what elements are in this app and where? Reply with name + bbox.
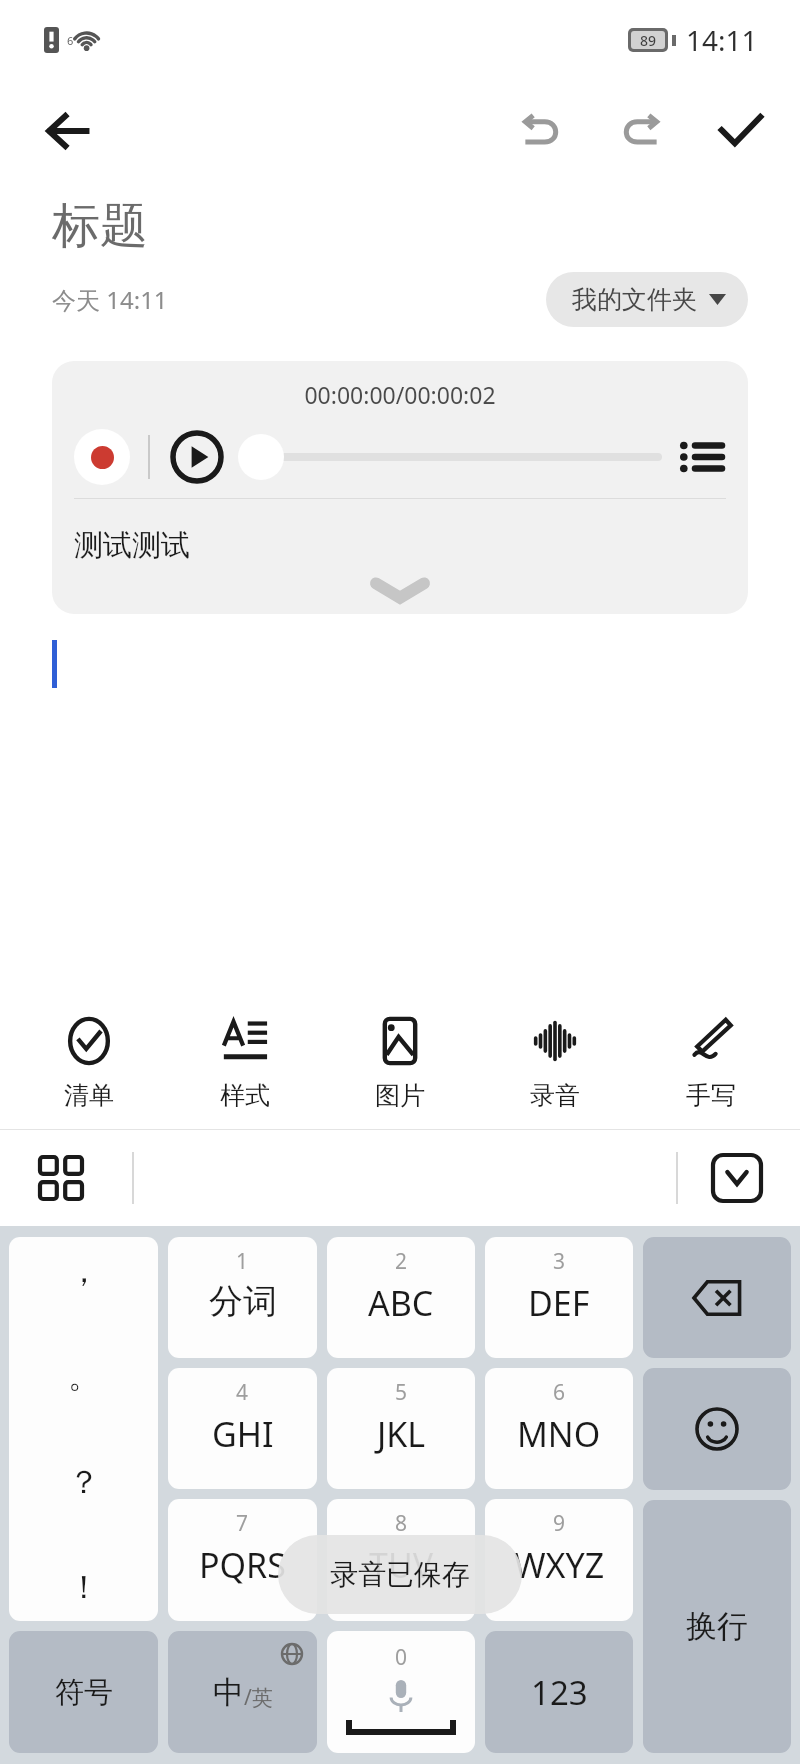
button[interactable]: 样式: [179, 1008, 311, 1119]
staticText: 2: [395, 1247, 408, 1276]
staticText: ，: [68, 1251, 100, 1291]
staticText: 今天 14:11: [52, 283, 168, 316]
staticText: JKL: [377, 1411, 426, 1457]
staticText: 9: [553, 1509, 566, 1538]
button[interactable]: 123: [485, 1631, 633, 1753]
button[interactable]: Playlist: [676, 432, 726, 482]
staticText: 。: [68, 1356, 100, 1396]
staticText: 换行: [686, 1607, 748, 1646]
staticText: PQRS: [199, 1542, 286, 1588]
staticText: 123: [531, 1670, 588, 1715]
staticText: 00:00:00/00:00:02: [52, 379, 748, 410]
staticText: 我的文件夹: [572, 284, 697, 315]
staticText: GHI: [212, 1411, 274, 1457]
staticText: 3: [553, 1247, 566, 1276]
button[interactable]: Space: [327, 1631, 475, 1753]
button[interactable]: Undo: [506, 96, 576, 166]
button[interactable]: 7: [168, 1499, 317, 1621]
button[interactable]: 8: [327, 1499, 475, 1621]
button[interactable]: Backspace: [643, 1237, 791, 1358]
button[interactable]: Expand: [52, 572, 748, 608]
staticText: DEF: [528, 1280, 590, 1326]
staticText: 手写: [686, 1080, 736, 1111]
button[interactable]: 2: [327, 1237, 475, 1358]
button[interactable]: 符号: [9, 1631, 158, 1753]
button[interactable]: Back: [34, 97, 102, 165]
staticText: ABC: [368, 1280, 434, 1326]
button[interactable]: 清单: [23, 1008, 155, 1119]
button[interactable]: Redo: [606, 96, 676, 166]
staticText: 分词: [209, 1280, 277, 1323]
staticText: 图片: [375, 1080, 425, 1111]
staticText: 录音: [530, 1080, 580, 1111]
staticText: 0: [395, 1643, 408, 1672]
staticText: 5: [395, 1378, 408, 1407]
staticText: ？: [68, 1462, 100, 1502]
staticText: 标题: [52, 196, 148, 256]
staticText: 中: [213, 1673, 244, 1712]
button[interactable]: 00:00:00/00:00:02: [52, 361, 748, 614]
staticText: 7: [236, 1509, 249, 1538]
button[interactable]: 换行: [643, 1500, 791, 1753]
button[interactable]: 4: [168, 1368, 317, 1489]
button[interactable]: 3: [485, 1237, 633, 1358]
staticText: 符号: [55, 1674, 113, 1711]
button[interactable]: 6: [485, 1368, 633, 1489]
button[interactable]: 图片: [334, 1008, 466, 1119]
staticText: 样式: [220, 1080, 270, 1111]
staticText: ！: [68, 1567, 100, 1607]
staticText: 89: [640, 31, 657, 49]
button[interactable]: Play: [170, 430, 224, 484]
staticText: WXYZ: [514, 1542, 605, 1588]
staticText: 4: [236, 1378, 249, 1407]
staticText: TUV: [369, 1542, 434, 1588]
button[interactable]: Record: [74, 429, 130, 485]
staticText: /英: [244, 1683, 273, 1712]
staticText: 8: [395, 1509, 408, 1538]
button[interactable]: Keyboard layout: [26, 1143, 96, 1213]
button[interactable]: Done: [706, 96, 776, 166]
staticText: 6: [67, 33, 74, 48]
staticText: 6: [553, 1378, 566, 1407]
staticText: 清单: [64, 1080, 114, 1111]
staticText: 14:11: [686, 21, 758, 59]
button[interactable]: 1: [168, 1237, 317, 1358]
button[interactable]: Emoji: [643, 1368, 791, 1490]
button[interactable]: ，: [9, 1237, 158, 1621]
staticText: 测试测试: [74, 527, 190, 564]
button[interactable]: 我的文件夹: [546, 272, 748, 327]
staticText: MNO: [517, 1411, 601, 1457]
button[interactable]: 中: [168, 1631, 317, 1753]
button[interactable]: 9: [485, 1499, 633, 1621]
staticText: 1: [236, 1247, 249, 1276]
button[interactable]: 录音: [489, 1008, 621, 1119]
staticText: 录音已保存: [330, 1557, 470, 1592]
button[interactable]: 手写: [645, 1008, 777, 1119]
button[interactable]: Hide keyboard: [702, 1143, 772, 1213]
button[interactable]: 5: [327, 1368, 475, 1489]
